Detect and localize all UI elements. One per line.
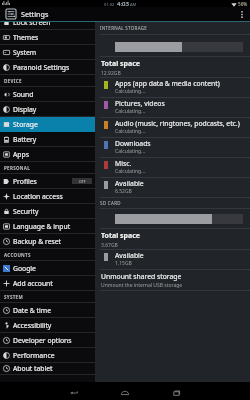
button[interactable]: Location access: [0, 189, 95, 203]
button[interactable]: Back: [62, 387, 86, 398]
button[interactable]: Date & time: [0, 303, 95, 317]
button[interactable]: Backup & reset: [0, 234, 95, 248]
button[interactable]: Accessibility: [0, 318, 95, 332]
staticText: Pictures, videos: [115, 99, 165, 108]
button[interactable]: Apps (app data & media content): [95, 78, 250, 98]
staticText: 01:02: [104, 2, 115, 7]
staticText: Misc.: [115, 159, 132, 168]
button[interactable]: Developer options: [0, 333, 95, 347]
staticText: Security: [13, 207, 39, 216]
staticText: Available: [115, 179, 144, 188]
staticText: PERSONAL: [4, 165, 30, 171]
staticText: 1.15GB: [115, 260, 132, 267]
staticText: Unmount shared storage: [101, 272, 182, 281]
button[interactable]: Battery: [0, 132, 95, 146]
staticText: Storage: [13, 120, 38, 129]
staticText: 6.52GB: [115, 188, 132, 195]
button[interactable]: Lock screen: [0, 22, 95, 29]
staticText: Lock screen: [13, 22, 51, 27]
staticText: AM: [130, 2, 137, 7]
button[interactable]: Google: [0, 261, 95, 275]
staticText: Apps: [13, 150, 29, 159]
staticText: Audio (music, ringtones, podcasts, etc.): [115, 119, 240, 128]
button[interactable]: Unmount shared storage: [95, 270, 250, 291]
staticText: Performance: [13, 351, 55, 360]
button[interactable]: Storage: [0, 117, 95, 131]
button[interactable]: Display: [0, 102, 95, 116]
staticText: Date & time: [13, 306, 51, 315]
staticText: Location access: [13, 192, 63, 201]
staticText: Backup & reset: [13, 237, 62, 246]
button[interactable]: Paranoid Settings: [0, 60, 95, 74]
button[interactable]: Apps: [0, 147, 95, 161]
staticText: SD CARD: [100, 200, 121, 206]
staticText: Sound: [13, 90, 34, 99]
staticText: Calculating...: [115, 88, 146, 95]
staticText: SYSTEM: [4, 294, 23, 300]
staticText: Calculating...: [115, 128, 146, 135]
staticText: Settings: [21, 9, 49, 19]
staticText: Total space: [101, 59, 140, 69]
button[interactable]: Recent apps: [164, 387, 188, 398]
staticText: Add account: [13, 279, 53, 288]
button[interactable]: More options: [234, 7, 250, 21]
button[interactable]: Security: [0, 204, 95, 218]
staticText: Calculating...: [115, 108, 146, 115]
button[interactable]: Language & input: [0, 219, 95, 233]
staticText: Apps (app data & media content): [115, 79, 220, 88]
staticText: Developer options: [13, 336, 72, 345]
staticText: Battery: [13, 135, 37, 144]
staticText: ACCOUNTS: [4, 252, 31, 258]
staticText: Calculating...: [115, 168, 146, 175]
staticText: Language & input: [13, 222, 71, 231]
staticText: 3.67GB: [101, 242, 118, 249]
staticText: Profiles: [13, 177, 37, 186]
button[interactable]: Settings: [5, 8, 49, 20]
staticText: OFF: [79, 179, 86, 184]
staticText: Available: [115, 251, 144, 260]
staticText: Calculating...: [115, 148, 146, 155]
staticText: Display: [13, 105, 37, 114]
button[interactable]: Pictures, videos: [95, 98, 250, 118]
button[interactable]: Themes: [0, 30, 95, 44]
button[interactable]: Add account: [0, 276, 95, 290]
button[interactable]: Available: [95, 250, 250, 270]
staticText: Accessibility: [13, 321, 52, 330]
staticText: Total space: [101, 231, 140, 241]
staticText: Downloads: [115, 139, 151, 148]
button[interactable]: About tablet: [0, 363, 95, 374]
button[interactable]: Audio (music, ringtones, podcasts, etc.): [95, 118, 250, 138]
staticText: Paranoid Settings: [13, 63, 70, 72]
staticText: System: [13, 48, 37, 57]
button[interactable]: Profiles: [0, 174, 95, 188]
button[interactable]: Home: [113, 387, 137, 398]
staticText: About tablet: [13, 364, 53, 373]
button[interactable]: Available: [95, 178, 250, 198]
staticText: 12.92GB: [101, 70, 121, 77]
staticText: Google: [13, 264, 36, 273]
staticText: Unmount the internal USB storage: [101, 282, 183, 289]
staticText: 56%: [238, 1, 248, 7]
staticText: DEVICE: [4, 78, 22, 84]
button[interactable]: Misc.: [95, 158, 250, 178]
staticText: Themes: [13, 33, 39, 42]
button[interactable]: Sound: [0, 87, 95, 101]
staticText: 4:03: [117, 0, 129, 7]
staticText: INTERNAL STORAGE: [100, 25, 148, 31]
button[interactable]: Performance: [0, 348, 95, 362]
button[interactable]: System: [0, 45, 95, 59]
button[interactable]: Downloads: [95, 138, 250, 158]
